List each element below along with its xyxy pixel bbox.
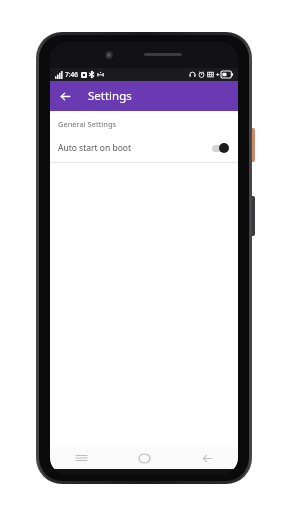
staticText: 7:46 [65, 70, 78, 79]
button[interactable]: Back [190, 447, 224, 469]
button[interactable]: Auto start on boot, on [210, 141, 229, 155]
staticText: General Settings [58, 119, 117, 129]
staticText: + [216, 71, 220, 79]
button[interactable]: Home [127, 447, 161, 469]
button[interactable]: Recent apps [64, 447, 98, 469]
button[interactable]: Auto start on boot [50, 137, 238, 158]
staticText: Settings [88, 88, 132, 104]
staticText: Auto start on boot [58, 142, 131, 154]
button[interactable]: Navigate up [50, 81, 80, 111]
